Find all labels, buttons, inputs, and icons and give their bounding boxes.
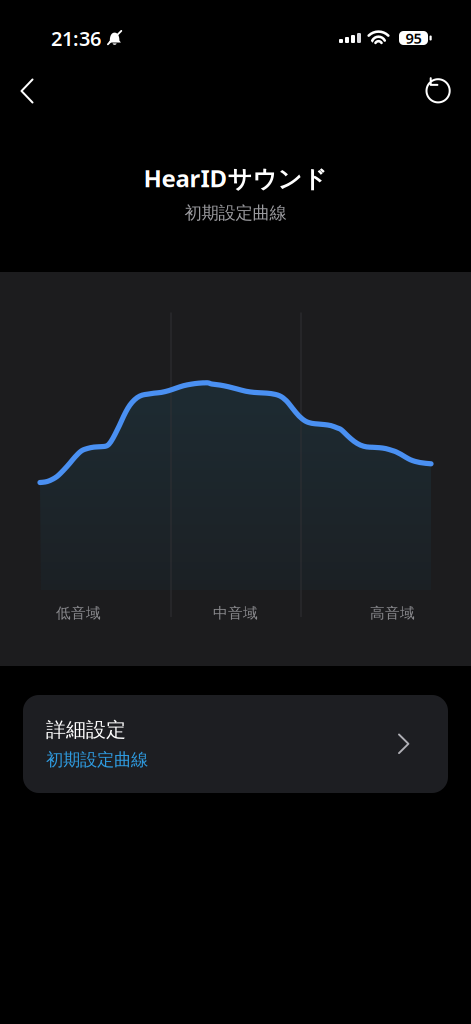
button[interactable]: 詳細設定 [23, 695, 448, 793]
staticText: 95 [405, 28, 421, 48]
staticText: 高音域 [370, 604, 415, 622]
staticText: 詳細設定 [46, 718, 126, 742]
staticText: 21:36 [51, 25, 101, 52]
staticText: 中音域 [213, 604, 258, 622]
staticText: 初期設定曲線 [184, 202, 286, 224]
staticText: 初期設定曲線 [46, 749, 148, 770]
staticText: 低音域 [56, 604, 101, 622]
staticText: HearIDサウンド [143, 162, 327, 194]
button[interactable]: Reset [414, 67, 463, 115]
button[interactable]: Back [5, 67, 49, 115]
